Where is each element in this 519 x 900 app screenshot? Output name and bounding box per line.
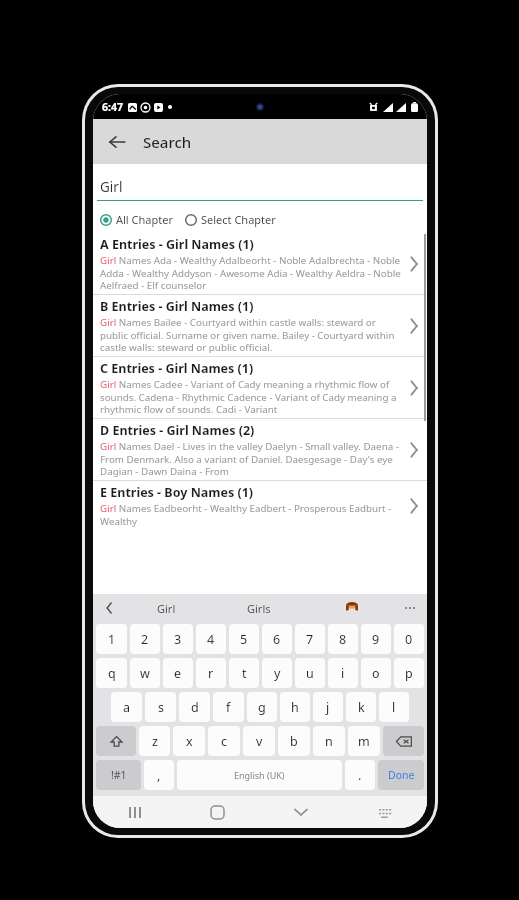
staticText: 6:47: [102, 100, 123, 114]
button[interactable]: D Entries - Girl Names (2): [93, 419, 427, 481]
button[interactable]: q: [96, 658, 127, 688]
button[interactable]: Hide keyboard: [259, 796, 343, 828]
staticText: z: [152, 733, 158, 750]
staticText: !#1: [111, 768, 127, 782]
staticText: x: [186, 733, 193, 750]
staticText: g: [258, 699, 266, 716]
staticText: C Entries - Girl Names (1): [100, 360, 254, 377]
button[interactable]: d: [179, 692, 210, 722]
button[interactable]: f: [213, 692, 244, 722]
button[interactable]: 4: [196, 624, 226, 654]
button[interactable]: Emoji: [305, 594, 398, 622]
button[interactable]: h: [280, 692, 310, 722]
staticText: 2: [141, 631, 149, 648]
button[interactable]: k: [346, 692, 376, 722]
button[interactable]: Recents: [93, 796, 176, 828]
staticText: Done: [388, 768, 415, 782]
staticText: n: [325, 733, 333, 750]
staticText: w: [140, 665, 150, 682]
staticText: Girl Names Bailee - Courtyard within cas…: [100, 316, 404, 353]
staticText: 4: [207, 631, 215, 648]
button[interactable]: g: [247, 692, 277, 722]
button[interactable]: E Entries - Boy Names (1): [93, 481, 427, 530]
button[interactable]: 7: [295, 624, 325, 654]
button[interactable]: i: [328, 658, 358, 688]
button[interactable]: l: [379, 692, 409, 722]
staticText: 8: [339, 631, 347, 648]
button[interactable]: z: [139, 726, 170, 756]
button[interactable]: All Chapter: [100, 212, 176, 227]
staticText: e: [174, 665, 182, 682]
button[interactable]: B Entries - Girl Names (1): [93, 295, 427, 357]
staticText: Search: [143, 132, 192, 152]
staticText: t: [242, 665, 247, 682]
button[interactable]: n: [313, 726, 345, 756]
staticText: b: [290, 733, 298, 750]
button[interactable]: a: [111, 692, 142, 722]
button[interactable]: !#1: [96, 760, 141, 790]
button[interactable]: x: [173, 726, 205, 756]
button[interactable]: 8: [328, 624, 358, 654]
button[interactable]: 0: [394, 624, 424, 654]
staticText: Girls: [247, 601, 271, 616]
staticText: d: [191, 699, 199, 716]
button[interactable]: Space: [177, 760, 342, 790]
staticText: E Entries - Boy Names (1): [100, 484, 254, 501]
staticText: 1: [108, 631, 116, 648]
button[interactable]: s: [145, 692, 176, 722]
button[interactable]: Girl: [93, 176, 427, 196]
button[interactable]: Home: [176, 796, 259, 828]
staticText: English (UK): [234, 769, 285, 781]
button[interactable]: Back: [98, 123, 136, 161]
staticText: l: [392, 699, 396, 716]
button[interactable]: t: [229, 658, 259, 688]
staticText: j: [326, 699, 330, 716]
button[interactable]: More options: [398, 596, 422, 620]
staticText: a: [123, 699, 131, 716]
staticText: i: [341, 665, 345, 682]
button[interactable]: .: [345, 760, 375, 790]
button[interactable]: u: [295, 658, 325, 688]
button[interactable]: y: [262, 658, 292, 688]
staticText: All Chapter: [116, 212, 173, 227]
staticText: Girl Names Dael - Lives in the valley Da…: [100, 440, 404, 477]
button[interactable]: Backspace: [383, 726, 424, 756]
button[interactable]: j: [313, 692, 343, 722]
button[interactable]: 2: [130, 624, 160, 654]
staticText: y: [274, 665, 281, 682]
staticText: s: [158, 699, 164, 716]
staticText: Girl Names Cadee - Variant of Cady meani…: [100, 378, 404, 415]
staticText: .: [358, 767, 362, 784]
button[interactable]: Girls: [212, 594, 305, 622]
button[interactable]: p: [394, 658, 424, 688]
button[interactable]: Shift: [96, 726, 136, 756]
button[interactable]: 6: [262, 624, 292, 654]
staticText: Girl Names Eadbeorht - Wealthy Eadbert -…: [100, 502, 404, 527]
button[interactable]: Previous suggestions: [98, 597, 120, 619]
button[interactable]: Select Chapter: [185, 212, 279, 227]
button[interactable]: C Entries - Girl Names (1): [93, 357, 427, 419]
button[interactable]: e: [163, 658, 193, 688]
button[interactable]: 9: [361, 624, 391, 654]
button[interactable]: 1: [96, 624, 127, 654]
staticText: A Entries - Girl Names (1): [100, 236, 254, 253]
button[interactable]: r: [196, 658, 226, 688]
button[interactable]: c: [208, 726, 240, 756]
staticText: o: [372, 665, 380, 682]
staticText: 3: [174, 631, 182, 648]
button[interactable]: Girl: [120, 594, 212, 622]
staticText: 9: [372, 631, 380, 648]
button[interactable]: 3: [163, 624, 193, 654]
button[interactable]: v: [243, 726, 275, 756]
button[interactable]: w: [130, 658, 160, 688]
button[interactable]: Done: [378, 760, 424, 790]
button[interactable]: ,: [144, 760, 174, 790]
button[interactable]: A Entries - Girl Names (1): [93, 233, 427, 295]
staticText: r: [208, 665, 214, 682]
staticText: Girl: [157, 601, 176, 616]
button[interactable]: m: [348, 726, 380, 756]
button[interactable]: b: [278, 726, 310, 756]
button[interactable]: 5: [229, 624, 259, 654]
button[interactable]: o: [361, 658, 391, 688]
button[interactable]: Switch keyboard: [343, 796, 427, 828]
